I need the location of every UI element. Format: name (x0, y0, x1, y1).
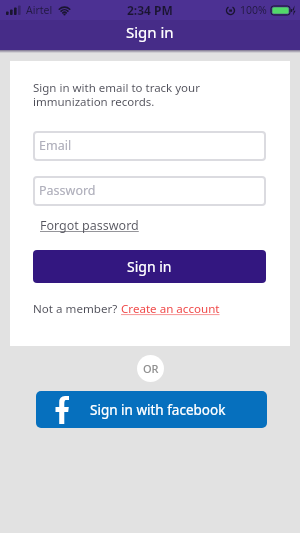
button[interactable]: Create an account (121, 301, 220, 317)
staticText: Sign in (126, 22, 174, 42)
staticText: Email (39, 137, 72, 154)
button[interactable]: Password (33, 176, 266, 206)
staticText: Sign in with email to track your immuniz… (33, 80, 200, 109)
staticText: Airtel (26, 3, 53, 17)
button[interactable]: Email (33, 131, 266, 161)
button[interactable]: Sign in (33, 250, 266, 283)
staticText: Create an account (121, 301, 220, 317)
staticText: 100% (240, 3, 267, 17)
staticText: Not a member? (33, 301, 121, 317)
staticText: 2:34 PM (127, 2, 173, 18)
staticText: Password (39, 182, 96, 199)
staticText: Forgot password (40, 217, 139, 234)
staticText: Sign in (127, 257, 172, 276)
staticText: OR (143, 361, 159, 376)
button[interactable]: Forgot password (40, 217, 139, 234)
button[interactable]: Sign in with facebook (36, 391, 267, 428)
staticText: Sign in with facebook (90, 401, 226, 419)
